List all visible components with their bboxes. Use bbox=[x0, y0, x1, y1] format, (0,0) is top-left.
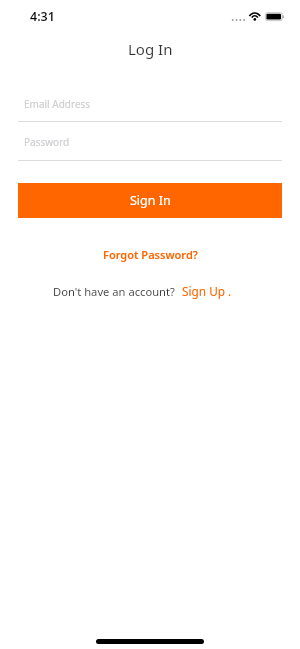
button[interactable]: Sign In bbox=[18, 183, 282, 218]
other: Wi-Fi bbox=[248, 11, 262, 21]
staticText: Email Address bbox=[24, 97, 91, 111]
staticText: Sign Up . bbox=[182, 283, 232, 299]
button[interactable]: Forgot Password? bbox=[97, 243, 204, 266]
staticText: Log In bbox=[128, 39, 173, 59]
button[interactable] bbox=[18, 89, 282, 122]
other: Battery full bbox=[264, 12, 285, 22]
staticText: Password bbox=[24, 135, 70, 149]
staticText: Sign In bbox=[130, 192, 171, 209]
button[interactable] bbox=[18, 127, 282, 161]
staticText: Forgot Password? bbox=[103, 247, 198, 262]
button[interactable]: Sign Up . bbox=[182, 283, 232, 299]
other: Cellular signal bbox=[231, 17, 245, 22]
staticText: Don't have an account? bbox=[53, 284, 175, 299]
staticText: 4:31 bbox=[30, 8, 55, 25]
